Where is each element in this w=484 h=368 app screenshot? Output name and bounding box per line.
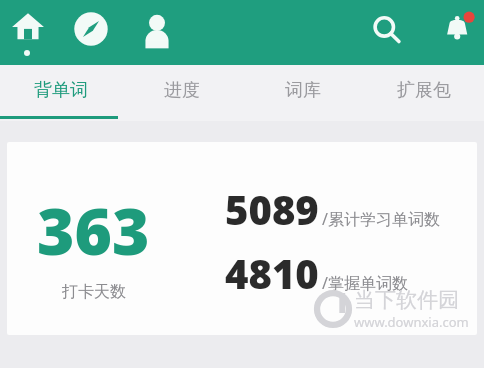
staticText: 363 — [37, 187, 150, 274]
staticText: 扩展包 — [397, 79, 451, 102]
button[interactable]: 363 — [7, 142, 477, 335]
staticText: 词库 — [285, 79, 321, 102]
staticText: 进度 — [164, 79, 200, 102]
staticText: 4810 — [225, 246, 319, 300]
button[interactable]: 词库 — [242, 65, 363, 121]
staticText: 当下软件园 — [354, 287, 459, 313]
staticText: /累计学习单词数 — [322, 208, 440, 230]
staticText: 打卡天数 — [62, 282, 126, 302]
staticText: /掌握单词数 — [322, 272, 408, 294]
button[interactable]: Discover — [70, 8, 112, 50]
button[interactable]: Home — [6, 5, 50, 49]
staticText: www.downxia.com — [354, 313, 469, 331]
button[interactable]: 扩展包 — [363, 65, 484, 121]
staticText: 5089 — [225, 182, 319, 236]
button[interactable]: Notifications — [438, 7, 480, 49]
button[interactable]: Profile — [137, 10, 177, 50]
button[interactable]: 进度 — [121, 65, 242, 121]
button[interactable]: Search — [366, 10, 408, 52]
staticText: 背单词 — [34, 79, 88, 102]
button[interactable]: 背单词 — [0, 65, 121, 121]
